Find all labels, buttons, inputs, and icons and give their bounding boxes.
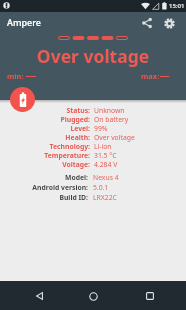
staticText: max: <box>141 71 160 81</box>
staticText: min: <box>7 71 24 81</box>
staticText: Health: <box>0 133 90 142</box>
staticText: Over voltage <box>0 44 186 68</box>
button[interactable] <box>10 87 35 112</box>
staticText: Model: <box>0 173 88 182</box>
staticText: LRX22C <box>93 193 117 202</box>
staticText: 5.0.1 <box>93 183 109 192</box>
staticText: Over voltage <box>94 133 135 142</box>
staticText: 99% <box>94 124 108 133</box>
staticText: Technology: <box>0 142 90 151</box>
button[interactable] <box>135 288 164 304</box>
button[interactable] <box>139 15 155 31</box>
staticText: Li-ion <box>94 142 112 151</box>
staticText: 15:01 <box>169 2 185 10</box>
staticText: Status: <box>0 106 90 115</box>
staticText: Plugged: <box>0 115 90 124</box>
staticText: Ampere <box>7 16 41 28</box>
staticText: Level: <box>0 124 90 133</box>
button[interactable] <box>78 288 108 304</box>
staticText: Build ID: <box>0 193 88 202</box>
staticText: On battery <box>94 115 129 124</box>
staticText: Nexus 4 <box>93 173 119 182</box>
staticText: 4.284 V <box>94 160 118 169</box>
staticText: 31.5 °C <box>94 151 117 160</box>
staticText: Temperature: <box>0 151 90 160</box>
staticText: Voltage: <box>0 160 90 169</box>
staticText: Unknown <box>94 106 125 115</box>
button[interactable] <box>161 15 177 31</box>
button[interactable] <box>25 288 54 304</box>
staticText: Android version: <box>0 183 88 192</box>
